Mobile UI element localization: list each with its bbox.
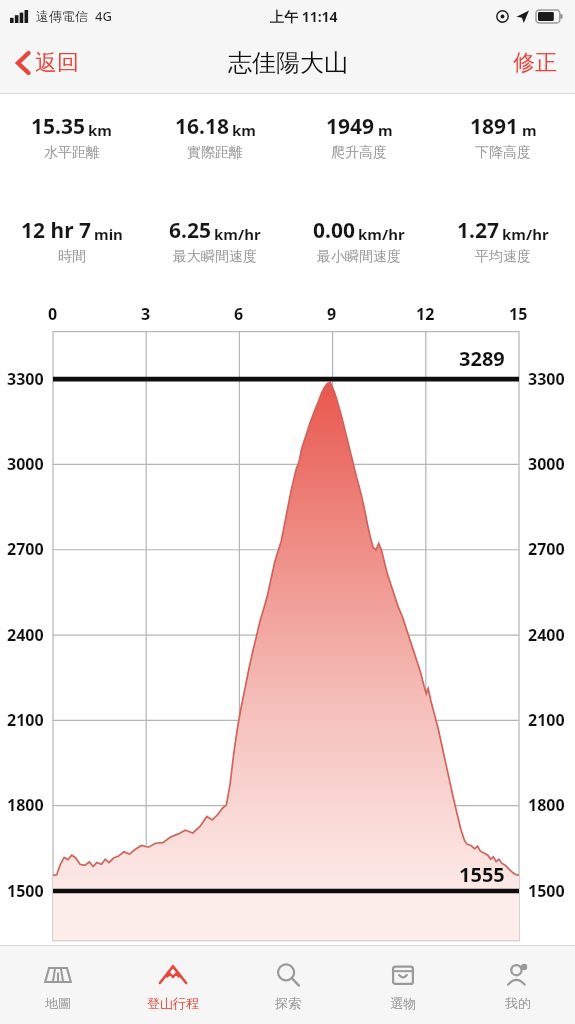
staticText: 下降高度 [475, 144, 531, 162]
button[interactable]: 返回 [8, 41, 87, 85]
staticText: 15 [509, 303, 528, 325]
staticText: 實際距離 [187, 144, 243, 162]
staticText: m [522, 120, 537, 140]
staticText: 1555 [459, 861, 505, 888]
staticText: km/hr [502, 224, 549, 244]
staticText: 1.27 [457, 216, 499, 245]
staticText: 我的 [505, 995, 531, 1011]
staticText: 15.35 [31, 112, 85, 141]
staticText: m [378, 120, 393, 140]
staticText: 3300 [7, 368, 44, 390]
staticText: 2700 [7, 538, 44, 560]
staticText: 4G [95, 7, 112, 25]
staticText: 探索 [275, 995, 301, 1011]
staticText: km/hr [214, 224, 261, 244]
staticText: km [232, 120, 256, 140]
staticText: 12 [416, 303, 435, 325]
staticText: 3300 [528, 368, 565, 390]
button[interactable]: 修正 [505, 41, 565, 85]
staticText: 平均速度 [475, 248, 531, 266]
staticText: 地圖 [45, 995, 71, 1011]
staticText: 2400 [528, 624, 565, 646]
staticText: 修正 [513, 49, 557, 77]
staticText: 3000 [7, 453, 44, 475]
staticText: 返回 [35, 49, 79, 77]
staticText: km [88, 120, 112, 140]
button[interactable]: 我的 [460, 946, 575, 1024]
staticText: 0 [48, 303, 58, 325]
staticText: 選物 [390, 995, 416, 1011]
staticText: 上午 11:14 [270, 7, 338, 26]
button[interactable]: 探索 [230, 946, 345, 1024]
staticText: 16.18 [175, 112, 229, 141]
staticText: 登山行程 [147, 995, 199, 1011]
staticText: min [94, 224, 123, 244]
staticText: 1500 [7, 880, 44, 902]
staticText: 3000 [528, 453, 565, 475]
staticText: 2100 [528, 709, 565, 731]
staticText: 時間 [58, 248, 86, 266]
staticText: 9 [327, 303, 337, 325]
staticText: 2100 [7, 709, 44, 731]
staticText: 1500 [528, 880, 565, 902]
staticText: 1800 [7, 794, 44, 816]
staticText: 12 hr 7 [21, 216, 91, 245]
button[interactable]: 登山行程 [115, 946, 230, 1024]
staticText: 2700 [528, 538, 565, 560]
staticText: 2400 [7, 624, 44, 646]
staticText: 1800 [528, 794, 565, 816]
staticText: km/hr [358, 224, 405, 244]
staticText: 遠傳電信 [36, 8, 88, 24]
staticText: 3289 [459, 345, 505, 372]
staticText: 最大瞬間速度 [173, 248, 257, 266]
staticText: 3 [141, 303, 151, 325]
staticText: 6 [234, 303, 244, 325]
staticText: 最小瞬間速度 [317, 248, 401, 266]
staticText: 爬升高度 [331, 144, 387, 162]
staticText: 水平距離 [44, 144, 100, 162]
staticText: 1891 [470, 112, 519, 141]
staticText: 6.25 [169, 216, 211, 245]
button[interactable]: 地圖 [0, 946, 115, 1024]
staticText: 1949 [326, 112, 375, 141]
button[interactable]: 選物 [345, 946, 460, 1024]
staticText: 0.00 [313, 216, 355, 245]
staticText: 志佳陽大山 [228, 48, 348, 78]
